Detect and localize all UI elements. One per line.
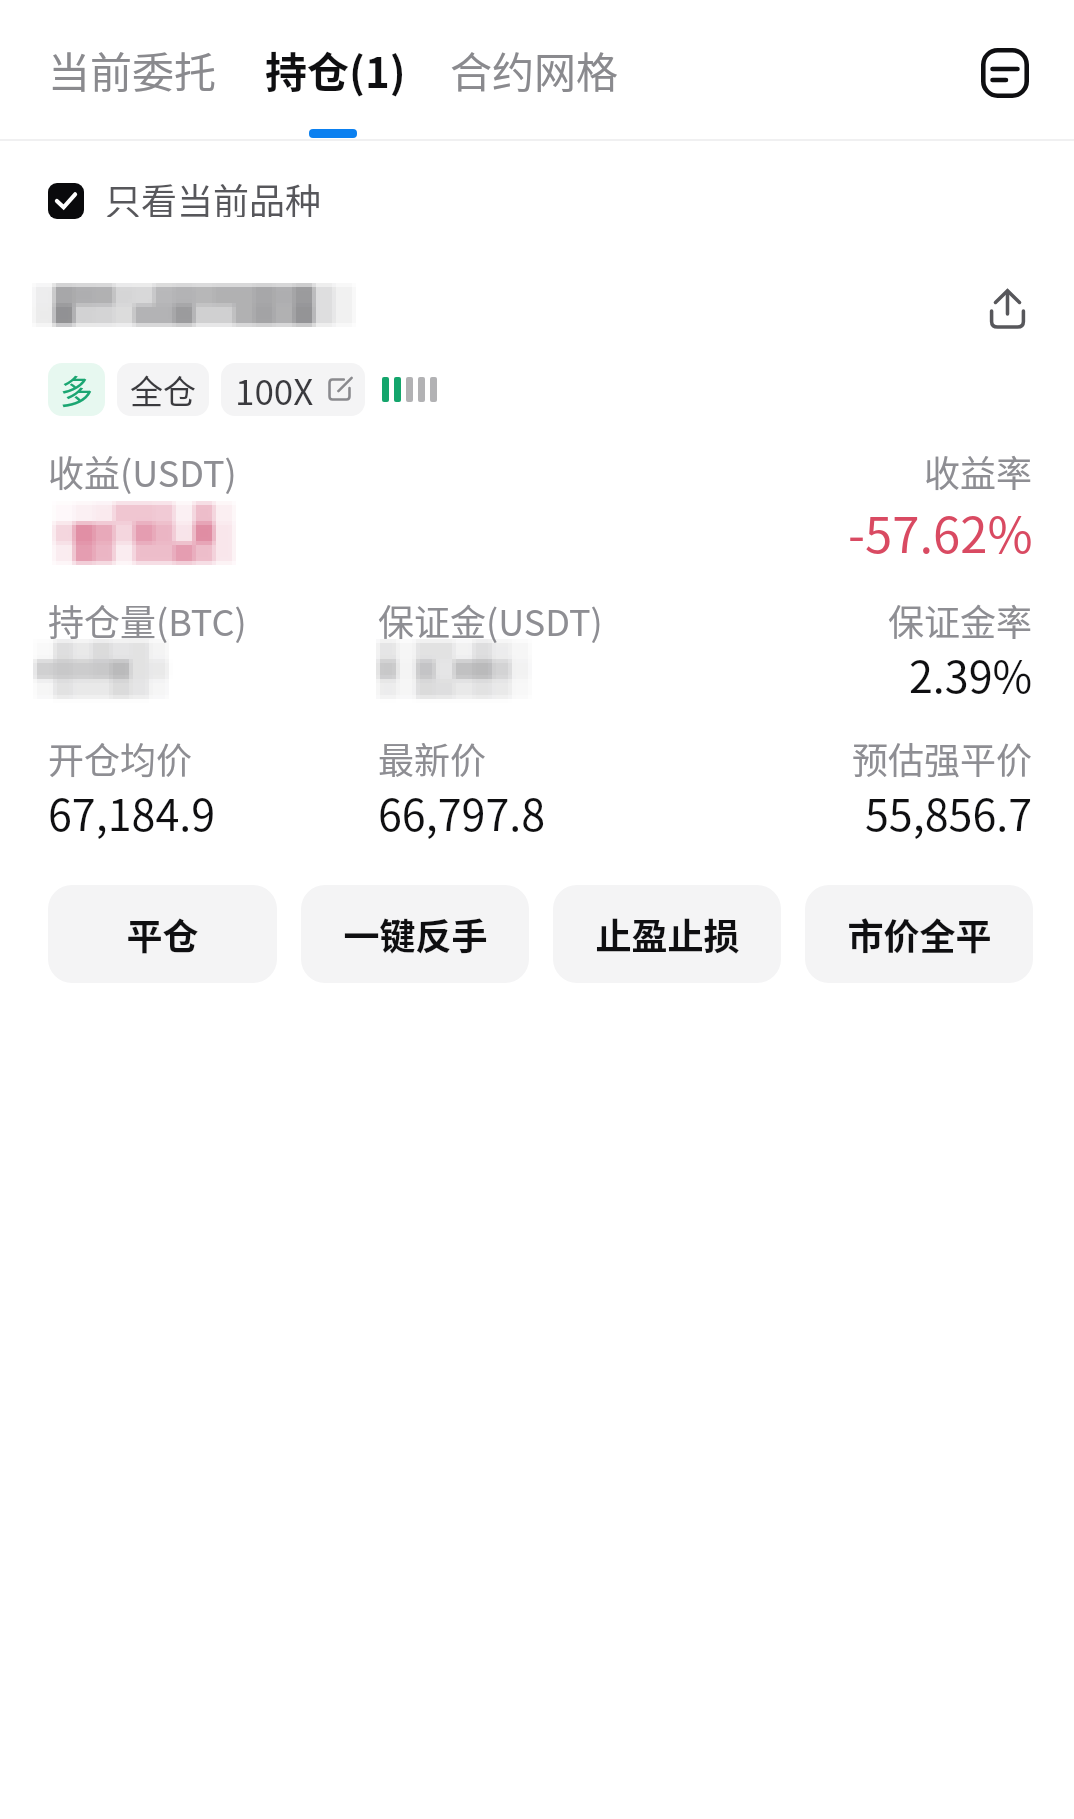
staticText: 开仓均价 — [48, 732, 193, 784]
button[interactable]: Share — [971, 272, 1043, 344]
staticText: -57.62% — [848, 496, 1033, 567]
staticText: 55,856.7 — [865, 781, 1033, 843]
button[interactable]: 止盈止损 — [553, 885, 781, 983]
staticText: 保证金率 — [888, 594, 1033, 646]
button[interactable]: 当前委托 — [44, 0, 221, 139]
staticText: 市价全平 — [847, 908, 992, 960]
staticText: 收益率 — [924, 445, 1033, 497]
staticText: 合约网格 — [450, 39, 619, 100]
staticText: 多 — [60, 366, 93, 414]
button[interactable]: 持仓(1) — [261, 0, 410, 139]
button[interactable]: 合约网格 — [446, 0, 623, 139]
button[interactable]: 平仓 — [48, 885, 277, 983]
button[interactable]: 只看当前品种 — [48, 173, 322, 217]
staticText: 100X — [235, 364, 314, 415]
staticText: 全仓 — [130, 366, 196, 414]
staticText: 保证金(USDT) — [378, 594, 603, 646]
staticText: 止盈止损 — [595, 908, 740, 960]
staticText: 持仓(1) — [265, 39, 406, 100]
staticText: 67,184.9 — [48, 781, 216, 843]
staticText: 66,797.8 — [378, 781, 546, 843]
button[interactable]: 市价全平 — [805, 885, 1033, 983]
staticText: 持仓量(BTC) — [48, 594, 247, 646]
button[interactable]: Position detail — [24, 258, 1050, 858]
staticText: 只看当前品种 — [105, 173, 322, 217]
staticText: 一键反手 — [343, 908, 488, 960]
button[interactable]: 一键反手 — [301, 885, 529, 983]
staticText: 2.39% — [909, 643, 1033, 705]
staticText: 收益(USDT) — [48, 445, 237, 497]
staticText: 预估强平价 — [852, 732, 1033, 784]
staticText: 最新价 — [378, 732, 487, 784]
staticText: 平仓 — [126, 908, 199, 960]
staticText: 当前委托 — [48, 39, 217, 100]
button[interactable]: 100X — [221, 363, 365, 416]
button[interactable]: Order records — [965, 33, 1045, 113]
